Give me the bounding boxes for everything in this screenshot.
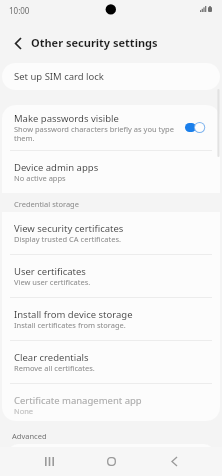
staticText: Install from device storage [14,308,133,321]
staticText: 10:00 [9,5,30,16]
staticText: Device admin apps [14,161,99,174]
button[interactable]: User certificates [2,255,220,297]
button[interactable]: Make passwords visible [2,105,220,150]
staticText: View security certificates [14,222,124,235]
staticText: Remove all certificates. [14,363,95,373]
staticText: View user certificates. [14,277,91,287]
staticText: Make passwords visible [14,112,119,125]
button[interactable]: Back [151,447,197,476]
button[interactable]: Certificate management app [2,384,220,421]
button[interactable]: View security certificates [2,212,220,254]
staticText: Clear credentials [14,351,89,364]
staticText: Advanced [12,431,47,441]
staticText: Display trusted CA certificates. [14,234,121,244]
button[interactable]: Navigate up [0,26,31,58]
staticText: Show password characters briefly as you … [14,124,180,143]
staticText: Other security settings [31,35,158,50]
button[interactable]: Recent apps [26,447,72,476]
staticText: Set up SIM card lock [14,70,104,83]
button[interactable]: Clear credentials [2,341,220,383]
button[interactable]: Make passwords visible toggle [185,121,206,134]
staticText: No active apps [14,173,66,183]
staticText: Install certificates from storage. [14,320,126,330]
staticText: None [14,406,34,416]
staticText: Credential storage [14,199,79,209]
staticText: User certificates [14,265,86,278]
button[interactable]: Device admin apps [2,151,220,193]
button[interactable]: Home [88,447,134,476]
staticText: Certificate management app [14,394,142,407]
button[interactable]: Set up SIM card lock [2,63,220,90]
button[interactable]: Install from device storage [2,298,220,340]
